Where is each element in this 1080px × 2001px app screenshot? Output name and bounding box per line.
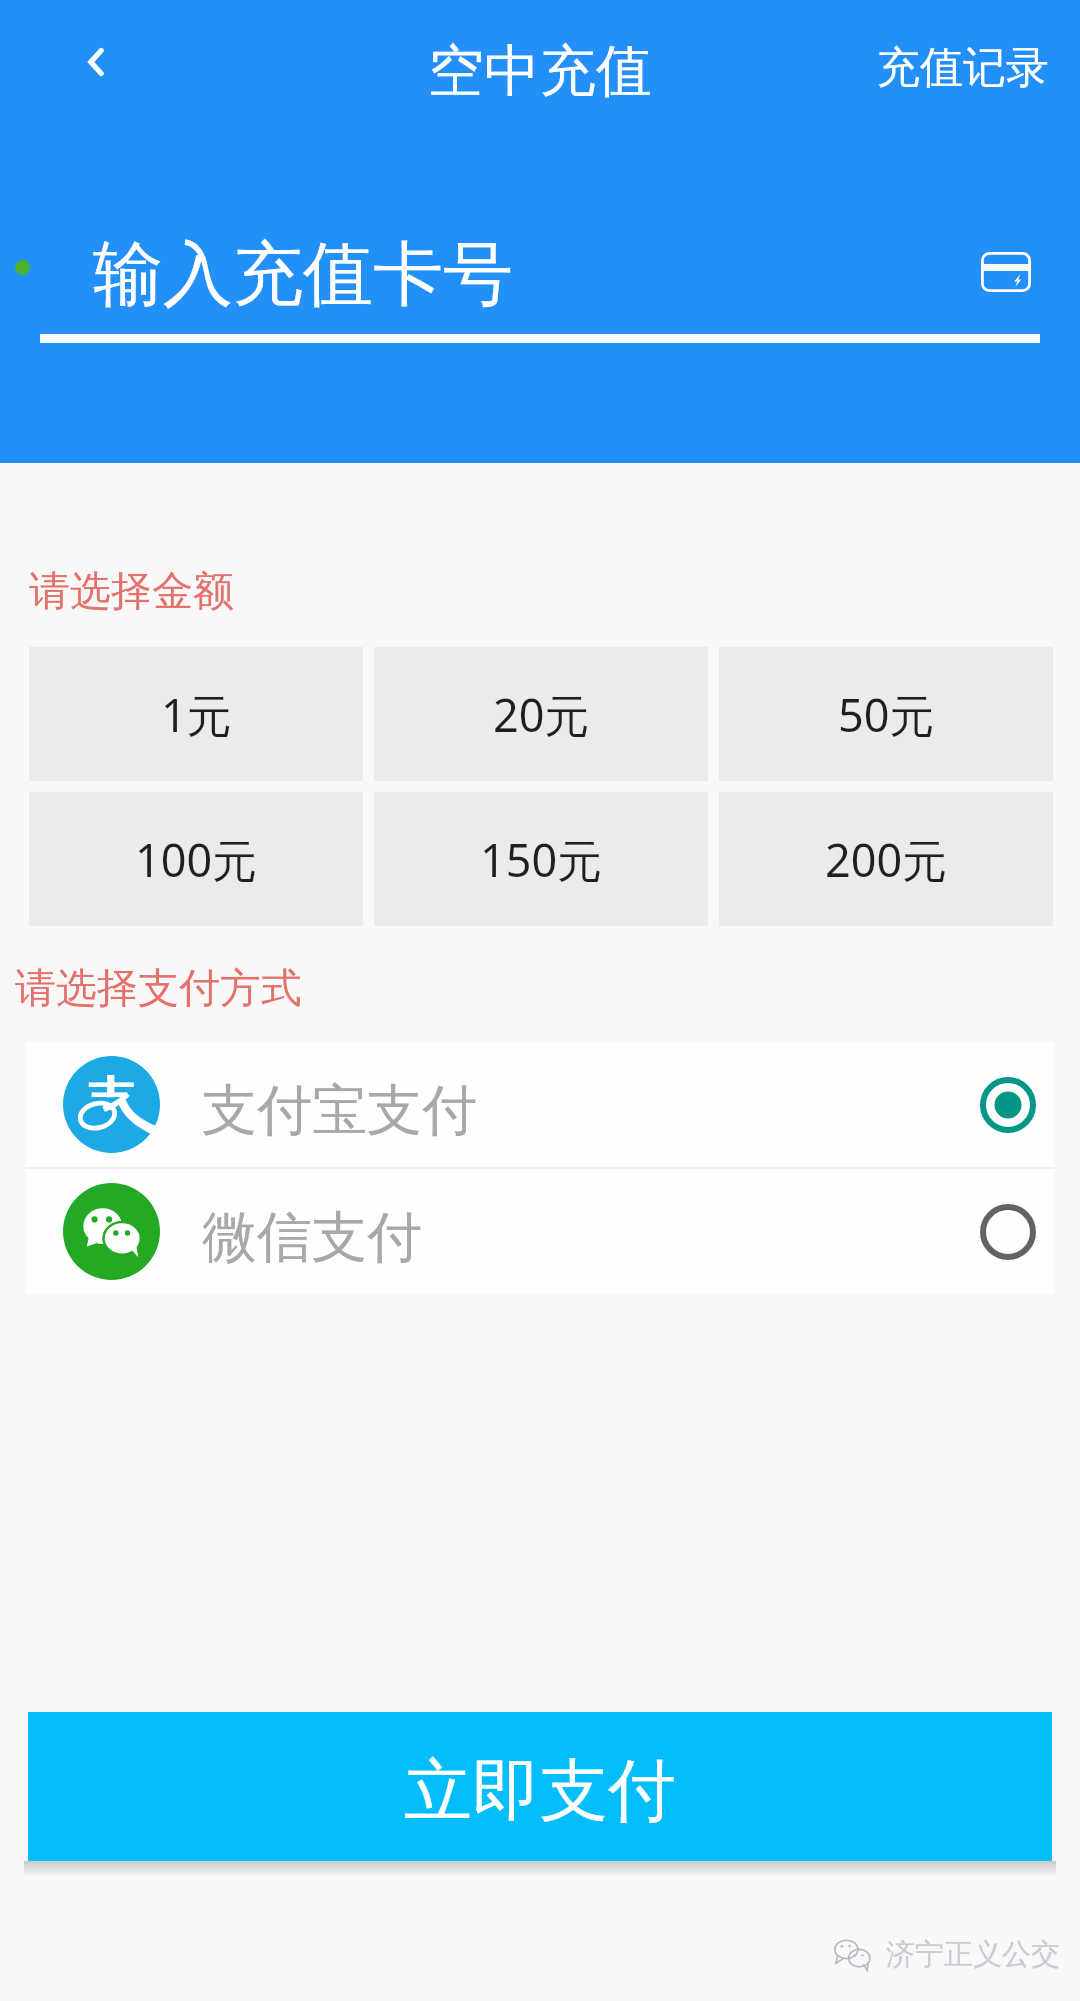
staticText: 济宁正义公交 bbox=[886, 1936, 1060, 1973]
staticText: 请选择支付方式 bbox=[15, 963, 302, 1015]
staticText: 请选择金额 bbox=[29, 566, 234, 618]
button[interactable]: 充值记录 bbox=[877, 41, 1049, 95]
button[interactable]: 1元 bbox=[29, 647, 363, 781]
button[interactable]: 立即支付 bbox=[28, 1712, 1052, 1861]
button[interactable]: 150元 bbox=[374, 792, 708, 926]
button[interactable]: 微信支付 bbox=[26, 1169, 1054, 1294]
button[interactable]: Scan card bbox=[951, 222, 1061, 322]
staticText: 立即支付 bbox=[404, 1749, 676, 1835]
button[interactable]: 100元 bbox=[29, 792, 363, 926]
button[interactable]: 200元 bbox=[719, 792, 1053, 926]
staticText: 50元 bbox=[838, 684, 935, 745]
button[interactable]: 20元 bbox=[374, 647, 708, 781]
button[interactable]: 50元 bbox=[719, 647, 1053, 781]
staticText: 输入充值卡号 bbox=[93, 231, 513, 319]
staticText: 200元 bbox=[825, 829, 948, 890]
staticText: 空中充值 bbox=[428, 36, 652, 107]
staticText: 充值记录 bbox=[877, 41, 1049, 95]
staticText: 20元 bbox=[493, 684, 590, 745]
staticText: 支付宝支付 bbox=[202, 1076, 477, 1145]
button[interactable]: Back bbox=[45, 12, 145, 112]
staticText: 100元 bbox=[135, 829, 258, 890]
staticText: 微信支付 bbox=[202, 1203, 422, 1272]
button[interactable]: 支付宝支付 bbox=[26, 1042, 1054, 1167]
staticText: 1元 bbox=[161, 684, 232, 745]
staticText: 150元 bbox=[480, 829, 603, 890]
